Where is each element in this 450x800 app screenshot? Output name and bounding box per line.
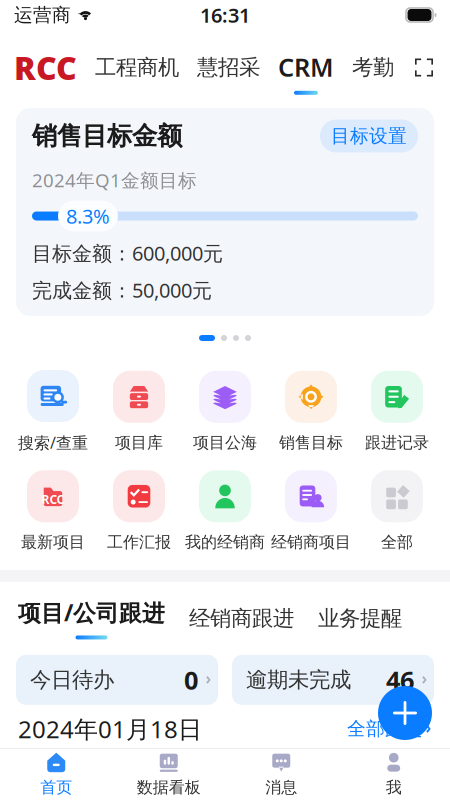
staticText: 我的经销商 <box>185 532 265 552</box>
staticText: 运营商 <box>14 3 71 26</box>
staticText: 目标金额：600,000元 <box>32 240 223 266</box>
button[interactable]: 首页 <box>0 748 112 800</box>
button[interactable]: RCC <box>10 470 96 552</box>
button[interactable]: 消息 <box>225 748 337 800</box>
staticText: 搜索/查重 <box>18 432 88 453</box>
button[interactable]: 销售目标 <box>268 371 354 452</box>
button[interactable]: 全部跟进 <box>347 717 432 740</box>
staticText: 逾期未完成 <box>246 667 351 693</box>
staticText: 首页 <box>40 778 72 797</box>
staticText: 目标设置 <box>331 124 407 147</box>
button[interactable]: 新建 <box>378 686 432 740</box>
staticText: 销售目标金额 <box>32 120 182 151</box>
staticText: 0 <box>184 663 198 697</box>
button[interactable]: 目标设置 <box>320 119 418 152</box>
staticText: RCC <box>14 46 77 89</box>
staticText: 今日待办 <box>30 667 114 693</box>
staticText: 最新项目 <box>21 532 85 552</box>
staticText: 业务提醒 <box>318 605 402 631</box>
button[interactable]: 项目库 <box>96 371 182 452</box>
staticText: 项目库 <box>115 433 163 452</box>
staticText: 慧招采 <box>197 54 260 81</box>
staticText: 数据看板 <box>137 778 201 797</box>
staticText: 经销商跟进 <box>189 605 294 631</box>
staticText: 8.3% <box>66 203 110 229</box>
staticText: RCC <box>41 491 64 507</box>
button[interactable]: 搜索/查重 <box>10 370 96 453</box>
button[interactable]: 经销商项目 <box>268 470 354 552</box>
button[interactable]: 项目/公司跟进 <box>18 597 165 639</box>
button[interactable]: 工程商机 <box>95 40 179 95</box>
staticText: 完成金额：50,000元 <box>32 277 212 303</box>
staticText: 46 <box>386 663 414 697</box>
button[interactable]: 我 <box>337 748 450 800</box>
button[interactable]: 今日待办 <box>16 655 218 705</box>
staticText: 工程商机 <box>95 54 179 81</box>
button[interactable]: 逾期未完成 <box>232 655 434 705</box>
staticText: 项目公海 <box>193 433 257 452</box>
staticText: CRM <box>278 50 334 84</box>
button[interactable]: 我的经销商 <box>182 470 268 552</box>
staticText: 全部跟进 <box>347 717 423 740</box>
button[interactable]: 慧招采 <box>197 40 260 95</box>
button[interactable]: 全部 <box>354 470 440 552</box>
button[interactable]: 数据看板 <box>112 748 225 800</box>
button[interactable]: 扫一扫 <box>412 40 436 95</box>
staticText: 工作汇报 <box>107 532 171 552</box>
button[interactable]: 项目公海 <box>182 371 268 452</box>
staticText: 16:31 <box>200 2 250 28</box>
button[interactable]: 跟进记录 <box>354 371 440 452</box>
button[interactable]: 考勤 <box>352 40 394 95</box>
button[interactable]: 经销商跟进 <box>189 605 294 631</box>
staticText: 跟进记录 <box>365 433 429 452</box>
staticText: 消息 <box>265 778 297 797</box>
staticText: 经销商项目 <box>271 532 351 552</box>
staticText: 2024年Q1金额目标 <box>32 168 197 192</box>
button[interactable]: 业务提醒 <box>318 605 402 631</box>
button[interactable]: 工作汇报 <box>96 470 182 552</box>
staticText: 我 <box>386 778 402 797</box>
staticText: 考勤 <box>352 54 394 81</box>
staticText: 2024年01月18日 <box>18 713 202 745</box>
staticText: 全部 <box>381 532 413 552</box>
staticText: 销售目标 <box>279 433 343 452</box>
button[interactable]: CRM <box>278 40 334 95</box>
staticText: 项目/公司跟进 <box>18 597 165 627</box>
